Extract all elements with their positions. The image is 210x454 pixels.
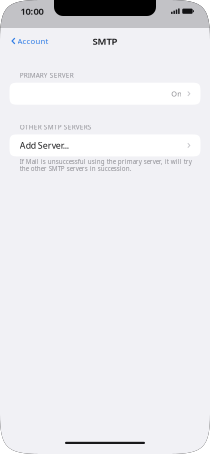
staticText: Add Server...	[20, 139, 69, 151]
staticText: On	[171, 89, 182, 99]
staticText: 10:00	[20, 5, 43, 17]
staticText: If Mail is unsuccessful using the primar…	[20, 157, 192, 166]
staticText: OTHER SMTP SERVERS	[20, 123, 92, 131]
staticText: PRIMARY SERVER	[20, 71, 74, 80]
staticText: Account	[18, 36, 49, 46]
staticText: the other SMTP servers in succession.	[20, 164, 132, 173]
button[interactable]: Account	[0, 28, 55, 54]
staticText: SMTP	[92, 34, 117, 48]
button[interactable]: On	[9, 83, 200, 105]
button[interactable]: Add Server...	[9, 134, 200, 156]
